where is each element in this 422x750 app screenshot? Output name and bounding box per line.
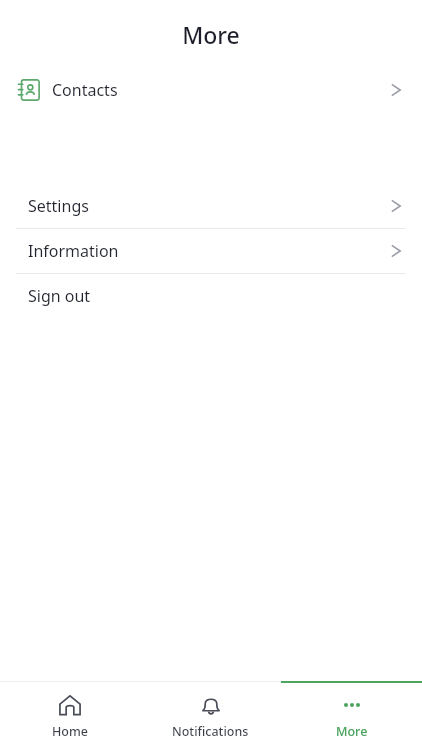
staticText: Sign out [28,285,91,307]
staticText: Information [28,240,119,262]
staticText: Notifications [172,723,249,740]
staticText: More [182,19,240,50]
button[interactable]: Contacts [0,68,422,112]
staticText: Contacts [52,79,118,101]
staticText: Home [52,723,89,740]
button[interactable]: Settings [0,184,422,228]
button[interactable]: Home [0,683,140,750]
staticText: More [336,723,368,740]
button[interactable]: Information [0,229,422,273]
button[interactable]: Notifications [140,683,281,750]
other: More [340,693,364,717]
button[interactable]: More [281,683,422,750]
other: Notifications [199,693,223,717]
other: Home [58,693,82,717]
button[interactable]: Sign out [0,274,422,318]
staticText: Settings [28,195,89,217]
